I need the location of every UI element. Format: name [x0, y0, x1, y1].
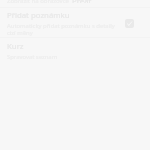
- staticText: Kurz: [7, 41, 24, 52]
- staticText: Zobrazit na obrazovce: [7, 0, 69, 4]
- button[interactable]: Přidat poznámku: [0, 8, 150, 38]
- staticText: Spravovat seznam: [7, 53, 58, 61]
- staticText: Přidat poznámku: [7, 10, 70, 21]
- staticText: Přeat: [72, 0, 92, 3]
- button[interactable]: Zobrazit na obrazovce: [0, 0, 150, 7]
- button[interactable]: Přidat poznámku: [125, 19, 134, 28]
